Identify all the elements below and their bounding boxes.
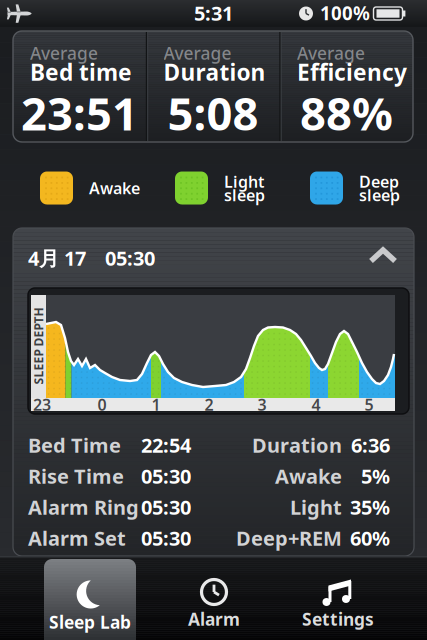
staticText: 05:30 xyxy=(141,463,191,489)
staticText: Efficiency xyxy=(297,57,407,87)
staticText: 2 xyxy=(204,394,213,415)
button[interactable]: Settings xyxy=(276,556,400,640)
staticText: Deep xyxy=(359,171,399,192)
staticText: Duration xyxy=(252,432,342,458)
staticText: 05:30 xyxy=(105,245,155,271)
staticText: Duration xyxy=(163,57,265,87)
staticText: 5 xyxy=(364,394,373,415)
staticText: 60% xyxy=(350,525,390,551)
button[interactable]: Alarm xyxy=(152,556,276,640)
staticText: Deep+REM xyxy=(236,525,342,551)
staticText: Alarm xyxy=(188,607,240,630)
staticText: 22:54 xyxy=(141,432,191,458)
staticText: Rise Time xyxy=(28,463,124,489)
staticText: Sleep Lab xyxy=(49,610,131,633)
staticText: Bed time xyxy=(30,57,132,87)
staticText: 5% xyxy=(361,463,390,489)
staticText: 05:30 xyxy=(141,494,191,520)
staticText: 100% xyxy=(320,1,370,25)
staticText: sleep xyxy=(359,184,400,206)
staticText: 6:36 xyxy=(351,432,390,458)
staticText: Alarm Set xyxy=(28,525,126,551)
staticText: 3 xyxy=(257,394,266,415)
staticText: Light xyxy=(290,494,342,520)
staticText: Average xyxy=(30,41,98,64)
staticText: 35% xyxy=(350,494,390,520)
staticText: 5:31 xyxy=(194,0,233,26)
staticText: Bed Time xyxy=(28,432,121,458)
button[interactable]: Sleep Lab xyxy=(44,559,136,640)
staticText: Average xyxy=(297,41,365,64)
staticText: 5:08 xyxy=(167,83,258,143)
staticText: 4 xyxy=(311,394,320,415)
staticText: Light xyxy=(224,171,264,192)
staticText: 23:51 xyxy=(21,83,138,143)
staticText: SLEEP DEPTH xyxy=(0,338,77,354)
staticText: 05:30 xyxy=(141,525,191,551)
staticText: Awake xyxy=(275,463,342,489)
staticText: 0 xyxy=(97,394,106,415)
staticText: 4月 17 xyxy=(28,245,86,271)
staticText: 1 xyxy=(151,394,160,415)
staticText: Settings xyxy=(302,607,374,630)
staticText: sleep xyxy=(224,184,265,206)
staticText: Average xyxy=(163,41,231,64)
button[interactable]: Collapse xyxy=(368,244,398,268)
staticText: Awake xyxy=(89,177,140,199)
staticText: 88% xyxy=(300,83,393,143)
staticText: Alarm Ring xyxy=(28,494,139,520)
staticText: 23 xyxy=(33,394,51,415)
